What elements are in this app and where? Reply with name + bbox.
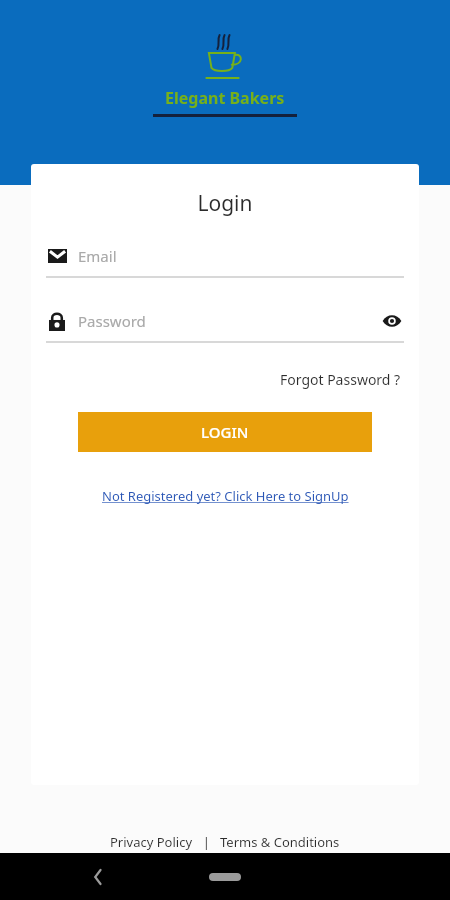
staticText: Password bbox=[78, 311, 146, 331]
staticText: Privacy Policy bbox=[110, 833, 193, 851]
button[interactable]: Terms & Conditions bbox=[217, 830, 343, 854]
button[interactable]: Show password bbox=[380, 309, 404, 333]
staticText: Login bbox=[31, 189, 419, 218]
staticText: Terms & Conditions bbox=[220, 833, 340, 851]
staticText: LOGIN bbox=[201, 422, 249, 442]
staticText: Forgot Password ? bbox=[280, 370, 401, 389]
button[interactable]: Password bbox=[46, 308, 404, 334]
staticText: Not Registered yet? Click Here to SignUp bbox=[102, 487, 349, 505]
button[interactable]: Home bbox=[209, 873, 241, 881]
staticText: Email bbox=[78, 246, 117, 266]
button[interactable]: Forgot Password ? bbox=[278, 367, 403, 392]
button[interactable]: Back bbox=[84, 863, 112, 891]
staticText: Elegant Bakers bbox=[165, 87, 285, 109]
button[interactable]: Email bbox=[46, 243, 404, 269]
staticText: | bbox=[196, 833, 217, 851]
button[interactable]: Not Registered yet? Click Here to SignUp bbox=[98, 484, 353, 508]
button[interactable]: LOGIN bbox=[78, 412, 372, 452]
button[interactable]: Privacy Policy bbox=[107, 830, 196, 854]
